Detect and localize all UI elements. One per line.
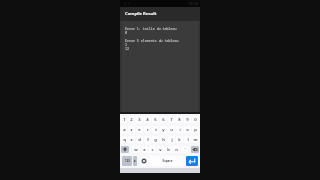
button[interactable]: g	[152, 136, 159, 143]
button[interactable]: 7	[168, 116, 175, 123]
button[interactable]: 9	[184, 116, 191, 123]
button[interactable]: '	[181, 146, 188, 153]
button[interactable]: q	[121, 136, 127, 143]
button[interactable]: Emoji	[140, 156, 148, 166]
staticText: k	[178, 137, 181, 143]
staticText: 7	[170, 117, 173, 123]
staticText: j	[171, 137, 173, 143]
button[interactable]: 123	[122, 156, 132, 166]
button[interactable]: u	[168, 126, 175, 133]
staticText: 5	[154, 117, 157, 123]
button[interactable]: Dictation	[133, 156, 137, 166]
button[interactable]: z	[128, 126, 135, 133]
button[interactable]: k	[176, 136, 183, 143]
staticText: '	[184, 147, 186, 153]
button[interactable]: s	[128, 136, 135, 143]
staticText: e	[138, 127, 141, 133]
staticText: Compile Result	[125, 11, 157, 17]
button[interactable]: 8	[176, 116, 183, 123]
staticText: g	[154, 137, 157, 143]
button[interactable]: n	[173, 146, 180, 153]
staticText: 1	[123, 117, 126, 123]
button[interactable]: t	[152, 126, 159, 133]
button[interactable]: w	[132, 146, 140, 153]
staticText: a	[123, 127, 126, 133]
button[interactable]: 2	[128, 116, 135, 123]
button[interactable]: 5	[152, 116, 159, 123]
button[interactable]: a	[121, 126, 127, 133]
button[interactable]: Return	[186, 156, 198, 166]
staticText: 3	[138, 117, 141, 123]
staticText: o	[186, 127, 189, 133]
staticText: 12	[125, 46, 129, 50]
button[interactable]: c	[149, 146, 156, 153]
staticText: x	[143, 147, 146, 153]
button[interactable]: o	[184, 126, 191, 133]
staticText: z	[130, 127, 133, 133]
staticText: 4	[146, 117, 149, 123]
button[interactable]: Shift	[121, 146, 129, 153]
button[interactable]: v	[157, 146, 164, 153]
staticText: 123	[125, 159, 130, 163]
button[interactable]: l	[184, 136, 191, 143]
button[interactable]: m	[192, 136, 199, 143]
staticText: c	[151, 147, 154, 153]
staticText: d	[138, 137, 141, 143]
staticText: y	[162, 127, 165, 133]
staticText: Error 1: taille du tableau	[125, 26, 177, 30]
button[interactable]: 1	[121, 116, 127, 123]
staticText: r	[147, 127, 149, 133]
button[interactable]: h	[160, 136, 167, 143]
staticText: 8	[178, 117, 181, 123]
staticText: l	[187, 137, 189, 143]
button[interactable]: 0	[192, 116, 199, 123]
button[interactable]: y	[160, 126, 167, 133]
button[interactable]: j	[168, 136, 175, 143]
staticText: w	[134, 147, 138, 153]
staticText: m	[193, 137, 198, 143]
button[interactable]: d	[136, 136, 143, 143]
staticText: i	[179, 127, 181, 133]
staticText: v	[159, 147, 162, 153]
staticText: t	[155, 127, 157, 133]
staticText: u	[170, 127, 173, 133]
button[interactable]: 6	[160, 116, 167, 123]
staticText: q	[123, 137, 126, 143]
staticText: 0	[125, 30, 127, 34]
button[interactable]: p	[192, 126, 199, 133]
button[interactable]: Backspace	[191, 146, 199, 153]
button[interactable]: r	[144, 126, 151, 133]
button[interactable]: Espace	[149, 156, 185, 166]
staticText: 2	[130, 117, 133, 123]
staticText: b	[167, 147, 170, 153]
staticText: h	[162, 137, 165, 143]
button[interactable]: f	[144, 136, 151, 143]
button[interactable]: e	[136, 126, 143, 133]
button[interactable]: 4	[144, 116, 151, 123]
staticText: Espace	[162, 159, 173, 163]
staticText: f	[147, 137, 149, 143]
button[interactable]: b	[165, 146, 172, 153]
staticText: 1	[125, 42, 127, 46]
staticText: n	[175, 147, 178, 153]
staticText: 6	[162, 117, 165, 123]
staticText: Error 5 elements du tableau	[125, 38, 179, 42]
staticText: s	[130, 137, 133, 143]
button[interactable]: x	[141, 146, 148, 153]
staticText: p	[194, 127, 197, 133]
staticText: 9	[186, 117, 189, 123]
button[interactable]: i	[176, 126, 183, 133]
button[interactable]: 3	[136, 116, 143, 123]
staticText: 0	[194, 117, 197, 123]
